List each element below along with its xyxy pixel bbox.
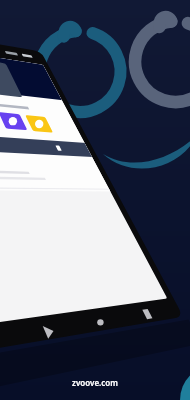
button[interactable]: zvoove.com	[0, 0, 190, 400]
staticText: zvoove.com	[72, 377, 118, 388]
